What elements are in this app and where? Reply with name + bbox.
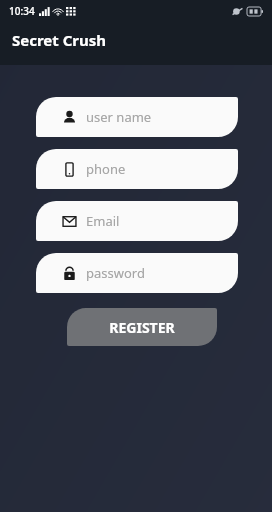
button[interactable]: phone <box>36 149 238 189</box>
staticText: 10:34 <box>9 4 35 18</box>
staticText: password <box>86 264 145 282</box>
staticText: user name <box>86 108 152 126</box>
button[interactable]: Email <box>36 201 238 241</box>
button[interactable]: password <box>36 253 238 293</box>
staticText: Email <box>86 212 120 230</box>
staticText: REGISTER <box>109 318 175 337</box>
staticText: phone <box>86 160 126 178</box>
button[interactable]: user name <box>36 97 238 137</box>
button[interactable]: REGISTER <box>67 308 217 346</box>
staticText: Secret Crush <box>12 30 107 50</box>
